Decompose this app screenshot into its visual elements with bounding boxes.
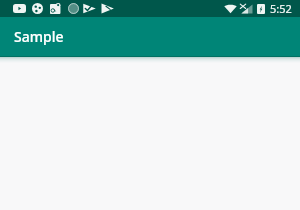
- other: Battery charging: [257, 4, 265, 14]
- other: No SIM card: [240, 3, 253, 14]
- other: Notification: [68, 3, 79, 14]
- other: Sports notification: [32, 3, 43, 14]
- staticText: 5:52: [270, 1, 292, 16]
- other: Play Protect notification: [83, 3, 96, 14]
- other: Play Store notification: [101, 3, 114, 14]
- staticText: Sample: [14, 27, 64, 46]
- other: YouTube notification: [13, 4, 26, 13]
- other: Maps notification: [50, 3, 61, 14]
- other: Wi-Fi signal: [224, 3, 237, 14]
